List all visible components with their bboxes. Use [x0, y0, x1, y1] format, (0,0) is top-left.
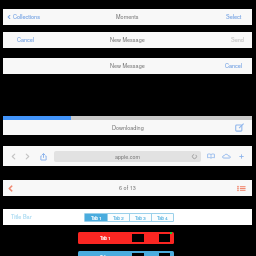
staticText: Tab 3	[135, 215, 146, 221]
button[interactable]: Title Bar	[11, 213, 32, 221]
button[interactable]: Send	[231, 36, 244, 44]
staticText: Tab 4	[157, 215, 168, 221]
button[interactable]: Bookmarks	[206, 151, 216, 161]
button[interactable]: Select	[226, 13, 242, 21]
other: Reload	[191, 153, 198, 160]
staticText: Title Bar	[11, 213, 32, 221]
staticText: Tab 1	[91, 215, 102, 221]
staticText: Cancel	[225, 62, 243, 70]
staticText: New Message	[110, 36, 145, 44]
button[interactable]: apple.com	[54, 151, 201, 162]
staticText: Tab 1	[100, 254, 111, 256]
button[interactable]: Tab 1	[78, 251, 132, 256]
staticText: Send	[231, 36, 244, 44]
staticText: Tab 2	[113, 215, 124, 221]
staticText: apple.com	[115, 153, 140, 161]
button[interactable]: New Tab	[237, 152, 246, 161]
staticText: Cancel	[17, 36, 35, 44]
button[interactable]: Tab 1	[78, 232, 132, 244]
button[interactable]: Collections	[6, 13, 40, 21]
button[interactable]: Cancel	[225, 62, 243, 70]
staticText: Moments	[116, 13, 139, 21]
staticText: Downloading	[112, 124, 144, 132]
button[interactable]: Tab 1	[85, 214, 107, 221]
button[interactable]: Back	[6, 184, 15, 193]
button[interactable]: Cancel	[17, 36, 35, 44]
staticText: Tab 1	[100, 235, 111, 241]
staticText: Select	[226, 13, 242, 21]
button[interactable]: Share	[38, 151, 49, 162]
staticText: 6 of 13	[119, 184, 136, 192]
button[interactable]: Tab 3	[130, 214, 151, 221]
button[interactable]: Back	[9, 152, 18, 161]
button[interactable]: Compose	[235, 123, 244, 132]
button[interactable]: Tab 2	[108, 214, 129, 221]
button[interactable]: Tab 4	[152, 214, 173, 221]
button[interactable]: List view	[237, 184, 246, 193]
button[interactable]: iCloud Tabs	[221, 151, 232, 162]
staticText: New Message	[110, 62, 145, 70]
button[interactable]: Forward	[23, 152, 32, 161]
staticText: Collections	[13, 13, 40, 21]
